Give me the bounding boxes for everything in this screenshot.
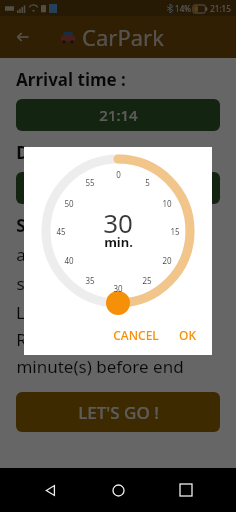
staticText: 30 xyxy=(103,205,133,240)
staticText: D xyxy=(16,141,29,164)
button[interactable] xyxy=(16,172,220,204)
staticText: 40 xyxy=(64,255,74,266)
staticText: L xyxy=(16,301,25,324)
button[interactable]: Back xyxy=(8,22,38,52)
staticText: CarPark xyxy=(82,22,164,52)
button[interactable]: 21:14 xyxy=(16,99,220,131)
staticText: 0 xyxy=(116,169,121,180)
staticText: 45 xyxy=(56,226,66,237)
staticText: 14% xyxy=(175,3,191,14)
staticText: 10 xyxy=(162,198,172,209)
staticText: a xyxy=(16,243,26,266)
staticText: Arrival time : xyxy=(16,68,126,91)
button[interactable]: Home xyxy=(100,472,136,508)
staticText: 50 xyxy=(64,198,74,209)
staticText: LET'S GO ! xyxy=(78,401,159,424)
button[interactable]: CANCEL xyxy=(107,323,165,347)
staticText: 21:15 xyxy=(210,3,231,14)
staticText: 35 xyxy=(85,275,95,286)
staticText: S xyxy=(16,214,26,237)
staticText: minute(s) before end xyxy=(16,355,184,378)
staticText: 30 xyxy=(113,283,123,294)
staticText: CANCEL xyxy=(113,327,159,343)
button[interactable]: Back xyxy=(32,472,68,508)
staticText: Reminder 5 xyxy=(16,328,113,351)
staticText: 5 xyxy=(145,177,150,188)
button[interactable]: LET'S GO ! xyxy=(16,392,220,432)
staticText: min. xyxy=(104,233,133,251)
staticText: OK xyxy=(179,327,196,343)
staticText: 25 xyxy=(142,275,152,286)
staticText: s xyxy=(16,272,25,295)
button[interactable]: Recents xyxy=(168,472,204,508)
staticText: 55 xyxy=(85,177,95,188)
staticText: 20 xyxy=(162,255,172,266)
staticText: 15 xyxy=(170,226,180,237)
button[interactable]: OK xyxy=(173,323,202,347)
staticText: 21:14 xyxy=(99,105,138,125)
